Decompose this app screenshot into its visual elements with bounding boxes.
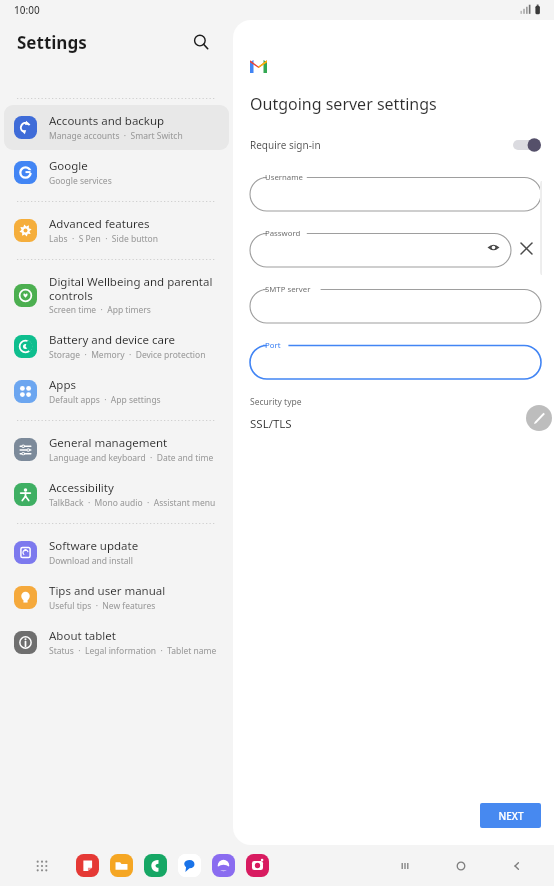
staticText: Software update <box>49 538 139 554</box>
staticText: Password <box>265 228 301 239</box>
button[interactable]: Clear password <box>511 233 541 263</box>
button[interactable]: Accessibility <box>4 472 229 517</box>
staticText: Storage · Memory · Device protection <box>49 349 206 361</box>
staticText: Require sign-in <box>250 138 321 152</box>
button[interactable]: Username <box>250 172 541 211</box>
staticText: Tips and user manual <box>49 583 166 599</box>
staticText: NEXT <box>498 809 524 823</box>
staticText: Battery and device care <box>49 332 176 348</box>
staticText: Advanced features <box>49 216 150 232</box>
button[interactable]: files <box>110 854 133 877</box>
staticText: Default apps · App settings <box>49 394 161 406</box>
button[interactable]: Edit <box>526 405 552 431</box>
button[interactable]: recents <box>392 853 418 879</box>
button[interactable]: messages <box>178 854 201 877</box>
staticText: Download and install <box>49 555 133 567</box>
button[interactable]: Search settings <box>186 27 216 57</box>
staticText: Settings <box>17 31 87 54</box>
staticText: SSL/TLS <box>250 416 292 432</box>
button[interactable]: back <box>504 853 530 879</box>
button[interactable]: NEXT <box>480 803 541 828</box>
button[interactable]: Edge panel <box>540 178 554 278</box>
staticText: Port <box>265 340 281 351</box>
staticText: TalkBack · Mono audio · Assistant menu <box>49 497 216 509</box>
button[interactable]: Software update <box>4 530 229 575</box>
button[interactable]: About tablet <box>4 620 229 665</box>
button[interactable]: Apps <box>4 369 229 414</box>
staticText: Accessibility <box>49 480 114 496</box>
staticText: Language and keyboard · Date and time <box>49 452 214 464</box>
button[interactable]: Port <box>250 340 541 379</box>
button[interactable]: Tips and user manual <box>4 575 229 620</box>
button[interactable]: Show password <box>485 239 502 256</box>
staticText: Username <box>265 172 303 183</box>
button[interactable]: Google <box>4 150 229 195</box>
button[interactable]: insta <box>246 854 269 877</box>
button[interactable]: SSL/TLS <box>250 416 541 432</box>
staticText: General management <box>49 435 168 451</box>
button[interactable]: internet <box>212 854 235 877</box>
staticText: 10:00 <box>14 3 40 17</box>
button[interactable]: phone <box>144 854 167 877</box>
staticText: Digital Wellbeing and parental controls <box>49 274 221 303</box>
staticText: About tablet <box>49 628 116 644</box>
button[interactable]: Digital Wellbeing and parental controls <box>4 266 229 324</box>
staticText: Manage accounts · Smart Switch <box>49 130 183 142</box>
staticText: Security type <box>250 396 302 408</box>
button[interactable]: All apps <box>30 854 54 878</box>
staticText: Labs · S Pen · Side button <box>49 233 158 245</box>
button[interactable] <box>513 138 541 152</box>
staticText: Status · Legal information · Tablet name <box>49 645 217 657</box>
button[interactable]: SMTP server <box>250 284 541 323</box>
button[interactable]: Password <box>250 228 511 267</box>
staticText: Screen time · App timers <box>49 304 151 316</box>
staticText: Google services <box>49 175 112 187</box>
staticText: Google <box>49 158 88 174</box>
staticText: Accounts and backup <box>49 113 165 129</box>
button[interactable]: Require sign-in <box>250 133 541 157</box>
button[interactable]: Advanced features <box>4 208 229 253</box>
button[interactable]: Accounts and backup <box>4 105 229 150</box>
staticText: Outgoing server settings <box>250 93 437 115</box>
button[interactable]: General management <box>4 427 229 472</box>
staticText: SMTP server <box>265 284 311 295</box>
staticText: Useful tips · New features <box>49 600 156 612</box>
staticText: Apps <box>49 377 77 393</box>
button[interactable]: Battery and device care <box>4 324 229 369</box>
button[interactable]: home <box>448 853 474 879</box>
button[interactable]: keep <box>76 854 99 877</box>
